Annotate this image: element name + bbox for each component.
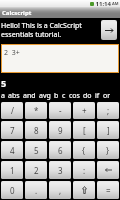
staticText: 4 [10, 145, 15, 156]
staticText: a [1, 91, 5, 101]
button[interactable]: Backspace [97, 161, 119, 179]
staticText: + [82, 105, 87, 116]
button[interactable]: 9 [49, 121, 71, 139]
button[interactable]: do [83, 91, 95, 101]
staticText: : [83, 165, 86, 176]
button[interactable]: 6 [49, 141, 71, 159]
button[interactable]: 3 [49, 161, 71, 179]
button[interactable]: and [23, 91, 39, 101]
staticText: * [34, 105, 39, 116]
staticText: cos [69, 91, 80, 101]
button[interactable]: if [95, 91, 103, 101]
staticText: avg [39, 91, 51, 101]
staticText: 7 [10, 125, 15, 136]
staticText: Hello! This is a CalcScript essentials t… [1, 21, 99, 39]
staticText: abs [8, 91, 20, 101]
staticText: , [59, 185, 62, 196]
button[interactable]: = [97, 181, 119, 199]
button[interactable]: : [73, 161, 95, 179]
staticText: 5 [34, 145, 39, 156]
button[interactable]: * [25, 102, 47, 119]
button[interactable]: cos [69, 91, 83, 101]
button[interactable]: 1 [1, 161, 23, 179]
button[interactable]: 0 [1, 181, 23, 199]
staticText: / [11, 105, 14, 116]
button[interactable]: [ [73, 121, 95, 139]
staticText: and [23, 91, 36, 101]
button[interactable]: Next [101, 20, 117, 40]
staticText: 5 [1, 77, 7, 88]
staticText: or [103, 91, 111, 101]
button[interactable]: ; [97, 102, 119, 119]
button[interactable]: b [54, 91, 62, 101]
button[interactable]: or [103, 91, 114, 101]
button[interactable]: c [62, 91, 69, 101]
staticText: 8 [34, 125, 39, 136]
button[interactable]: 4 [1, 141, 23, 159]
button[interactable]: { [73, 141, 95, 159]
staticText: c [62, 91, 66, 101]
button[interactable]: 7 [1, 121, 23, 139]
button[interactable]: + [73, 102, 95, 119]
button[interactable]: 8 [25, 121, 47, 139]
button[interactable]: 5 [25, 141, 47, 159]
staticText: Calcscript [2, 9, 32, 17]
button[interactable]: abs [8, 91, 23, 101]
staticText: { [82, 145, 86, 156]
staticText: [ [83, 125, 86, 136]
button[interactable]: , [49, 181, 71, 199]
button[interactable]: a [1, 91, 8, 101]
staticText: - [59, 105, 62, 116]
staticText: 9 [58, 125, 63, 136]
staticText: 6 [58, 145, 63, 156]
staticText: 2 [34, 165, 39, 176]
button[interactable]: 2 [25, 161, 47, 179]
button[interactable]: . [25, 181, 47, 199]
staticText: 11:14 [94, 0, 111, 7]
staticText: } [106, 145, 110, 156]
staticText: = [106, 185, 111, 196]
staticText: ; [107, 105, 110, 116]
staticText: . [35, 185, 38, 196]
button[interactable]: ] [97, 121, 119, 139]
staticText: b [54, 91, 59, 101]
staticText: AM [111, 1, 119, 6]
button[interactable]: avg [39, 91, 54, 101]
button[interactable]: } [97, 141, 119, 159]
staticText: 3 [58, 165, 63, 176]
staticText: ] [107, 125, 110, 136]
button[interactable]: Shift [73, 181, 95, 199]
staticText: 2 3+ [4, 48, 20, 58]
staticText: 1 [10, 165, 15, 176]
staticText: do [83, 91, 92, 101]
staticText: 0 [10, 185, 15, 196]
button[interactable]: - [49, 102, 71, 119]
button[interactable]: / [1, 102, 23, 119]
button[interactable]: 2 3+ [2, 45, 118, 72]
staticText: if [95, 91, 100, 101]
